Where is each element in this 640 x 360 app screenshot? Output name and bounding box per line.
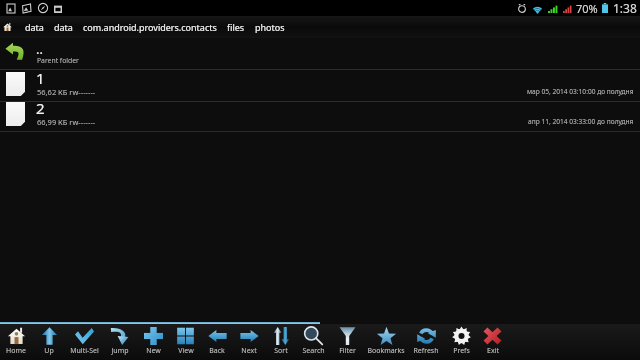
staticText: Jump <box>111 346 129 356</box>
staticText: Search <box>302 346 325 356</box>
staticText: апр 11, 2014 03:33:00 до полудня <box>528 117 634 126</box>
staticText: .. <box>36 40 43 58</box>
staticText: files <box>227 21 245 33</box>
button[interactable]: Sort <box>265 324 297 360</box>
button[interactable]: data <box>49 21 78 33</box>
button[interactable]: Up <box>32 324 66 360</box>
button[interactable]: Home <box>0 324 32 360</box>
button[interactable]: Bookmarks <box>365 324 407 360</box>
staticText: 66,99 КБ rw------- <box>37 117 96 127</box>
staticText: View <box>178 346 194 356</box>
staticText: Prefs <box>453 346 470 356</box>
button[interactable]: 1 <box>0 70 640 101</box>
staticText: com.android.providers.contacts <box>83 21 217 33</box>
staticText: Filter <box>339 346 356 356</box>
staticText: 56,62 КБ rw------- <box>37 87 96 97</box>
staticText: Up <box>44 346 54 356</box>
button[interactable]: Back <box>201 324 233 360</box>
staticText: New <box>146 346 161 356</box>
staticText: 70% <box>576 1 598 16</box>
staticText: Sort <box>274 346 288 356</box>
button[interactable]: Prefs <box>445 324 477 360</box>
button[interactable]: Search <box>297 324 329 360</box>
button[interactable]: photos <box>250 21 290 33</box>
staticText: Multi-Sel <box>70 346 99 356</box>
button[interactable]: New <box>136 324 170 360</box>
staticText: Back <box>209 346 225 356</box>
button[interactable]: Next <box>233 324 265 360</box>
staticText: Exit <box>487 346 499 356</box>
staticText: 2 <box>36 98 45 118</box>
staticText: Home <box>6 346 26 356</box>
button[interactable]: Refresh <box>407 324 445 360</box>
staticText: 1:38 <box>613 0 637 16</box>
staticText: Next <box>241 346 257 356</box>
button[interactable]: View <box>170 324 201 360</box>
staticText: photos <box>255 21 285 33</box>
button[interactable]: Filter <box>329 324 365 360</box>
staticText: data <box>54 21 73 33</box>
staticText: мар 05, 2014 03:10:00 до полудня <box>527 87 634 96</box>
staticText: Bookmarks <box>367 346 405 356</box>
button[interactable]: Home <box>3 22 12 32</box>
button[interactable]: Jump <box>103 324 136 360</box>
staticText: 1 <box>36 68 45 88</box>
button[interactable]: Multi-Sel <box>66 324 103 360</box>
button[interactable]: .. <box>0 38 640 69</box>
button[interactable]: 2 <box>0 102 640 131</box>
button[interactable]: Exit <box>477 324 508 360</box>
staticText: Parent folder <box>37 56 79 65</box>
button[interactable]: files <box>222 21 250 33</box>
staticText: Refresh <box>413 346 439 356</box>
staticText: data <box>25 21 44 33</box>
button[interactable]: com.android.providers.contacts <box>78 21 222 33</box>
button[interactable]: data <box>20 21 49 33</box>
